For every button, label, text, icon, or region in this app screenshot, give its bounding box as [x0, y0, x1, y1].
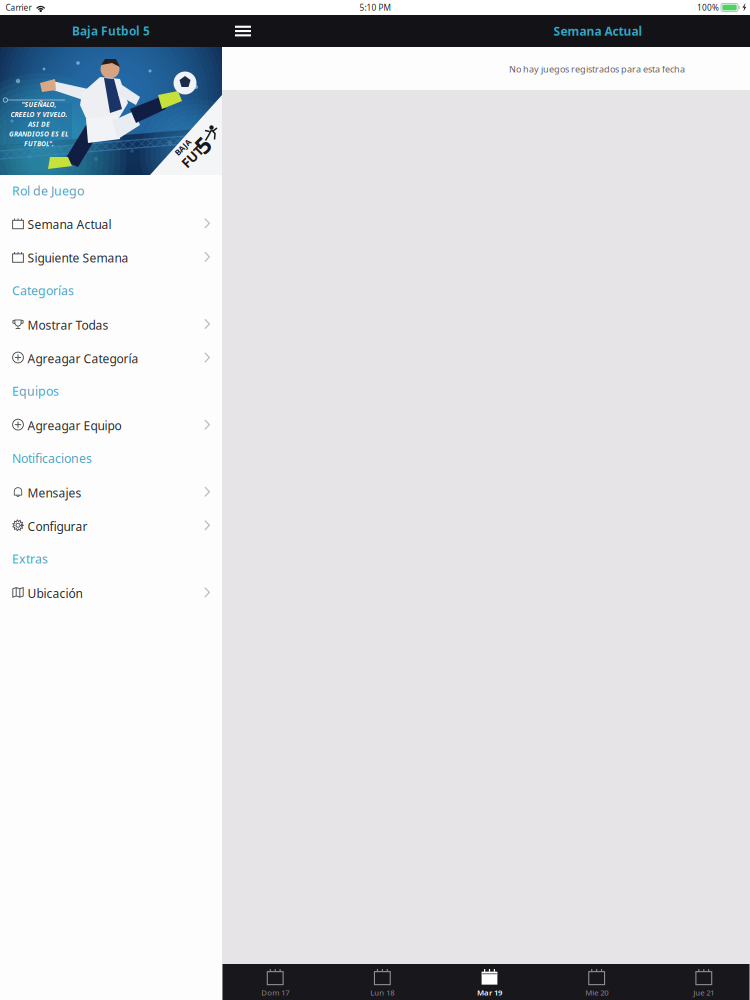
staticText: Mostrar Todas [28, 317, 109, 333]
staticText: Agreagar Categoría [28, 350, 139, 367]
staticText: FUT [176, 149, 201, 167]
staticText: Jue 21 [693, 987, 714, 998]
button[interactable]: Ubicación [0, 576, 222, 609]
staticText: Siguiente Semana [28, 250, 129, 266]
staticText: Agreagar Equipo [28, 417, 122, 434]
staticText: Baja Futbol 5 [72, 23, 150, 39]
staticText: CREELO Y VIVELO. [10, 110, 67, 119]
staticText: No hay juegos registrados para esta fech… [509, 63, 685, 75]
button[interactable]: Agreagar Equipo [0, 408, 222, 441]
button[interactable]: Menu [224, 16, 262, 46]
staticText: Carrier [6, 2, 32, 13]
button[interactable]: Agreagar Categoría [0, 341, 222, 374]
staticText: Lun 18 [370, 987, 394, 998]
staticText: BAJA [179, 139, 199, 150]
button[interactable]: Lun 18 [342, 966, 422, 999]
staticText: FUTBOL". [24, 139, 54, 148]
button[interactable]: Baja Futbol 5 [0, 15, 222, 47]
staticText: Categorías [12, 282, 74, 299]
button[interactable]: Dom 17 [235, 966, 315, 999]
staticText: GRANDIOSO ES EL [9, 129, 69, 138]
staticText: Mensajes [28, 485, 82, 501]
button[interactable]: Mensajes [0, 475, 222, 508]
staticText: 100% [697, 2, 719, 13]
staticText: Equipos [12, 383, 59, 399]
button[interactable]: Mostrar Todas [0, 307, 222, 341]
staticText: 5 [196, 130, 209, 160]
staticText: Dom 17 [261, 987, 289, 998]
staticText: Mar 19 [477, 987, 502, 998]
button[interactable]: Jue 21 [664, 966, 744, 999]
button[interactable]: Semana Actual [0, 206, 222, 240]
button[interactable]: Siguiente Semana [0, 240, 222, 274]
staticText: Rol de Juego [12, 182, 84, 199]
button[interactable]: Configurar [0, 508, 222, 542]
staticText: Semana Actual [553, 23, 642, 39]
staticText: ASI DE [28, 119, 50, 129]
staticText: Semana Actual [28, 216, 112, 232]
staticText: "SUEÑALO, [21, 100, 56, 109]
staticText: 5:10 PM [359, 2, 390, 13]
staticText: Mie 20 [585, 987, 608, 998]
button[interactable]: Mie 20 [557, 966, 637, 999]
staticText: Notificaciones [12, 450, 92, 467]
staticText: Extras [12, 550, 48, 567]
staticText: Configurar [28, 518, 88, 534]
button[interactable]: Mar 19 [449, 966, 529, 999]
staticText: Ubicación [28, 585, 83, 601]
